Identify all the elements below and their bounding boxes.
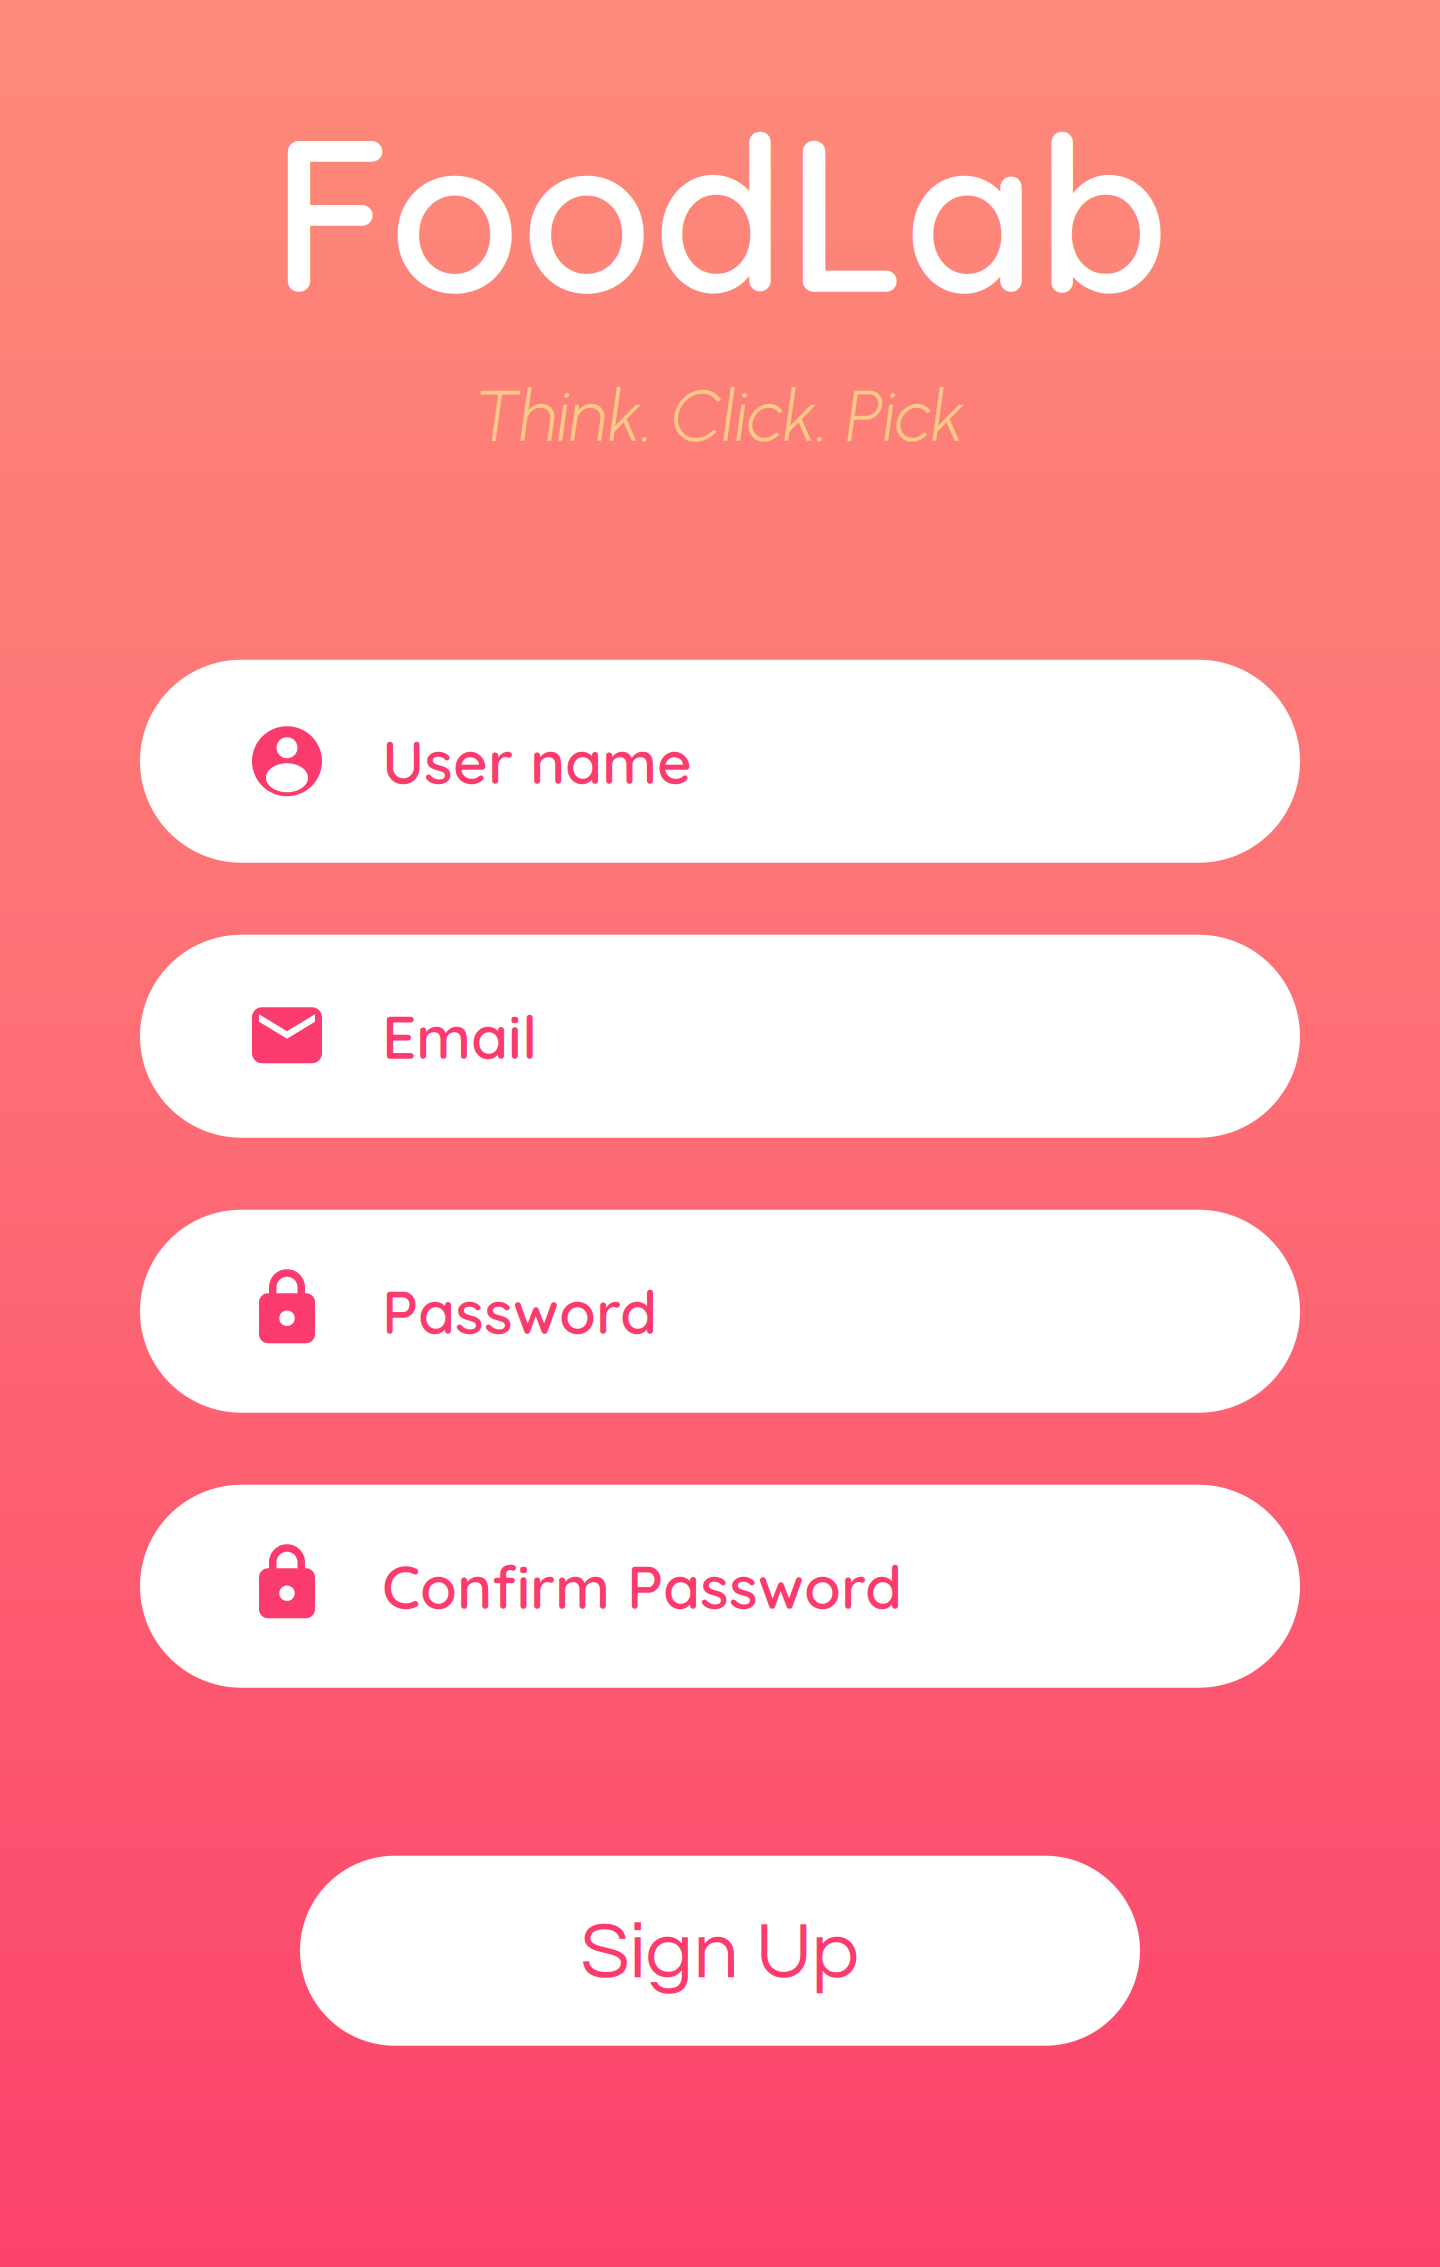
staticText: Confirm Password [382, 1549, 902, 1624]
staticText: Email [382, 999, 537, 1074]
button[interactable]: Password [140, 1210, 1300, 1413]
button[interactable]: Email [140, 935, 1300, 1138]
staticText: Password [382, 1274, 657, 1349]
button[interactable]: Sign Up [300, 1856, 1140, 2046]
staticText: User name [382, 724, 692, 799]
button[interactable]: User name [140, 660, 1300, 863]
staticText: Think. Click. Pick [474, 372, 965, 459]
button[interactable]: Confirm Password [140, 1485, 1300, 1688]
staticText: FoodLab [270, 77, 1169, 345]
staticText: Sign Up [580, 1911, 859, 1994]
